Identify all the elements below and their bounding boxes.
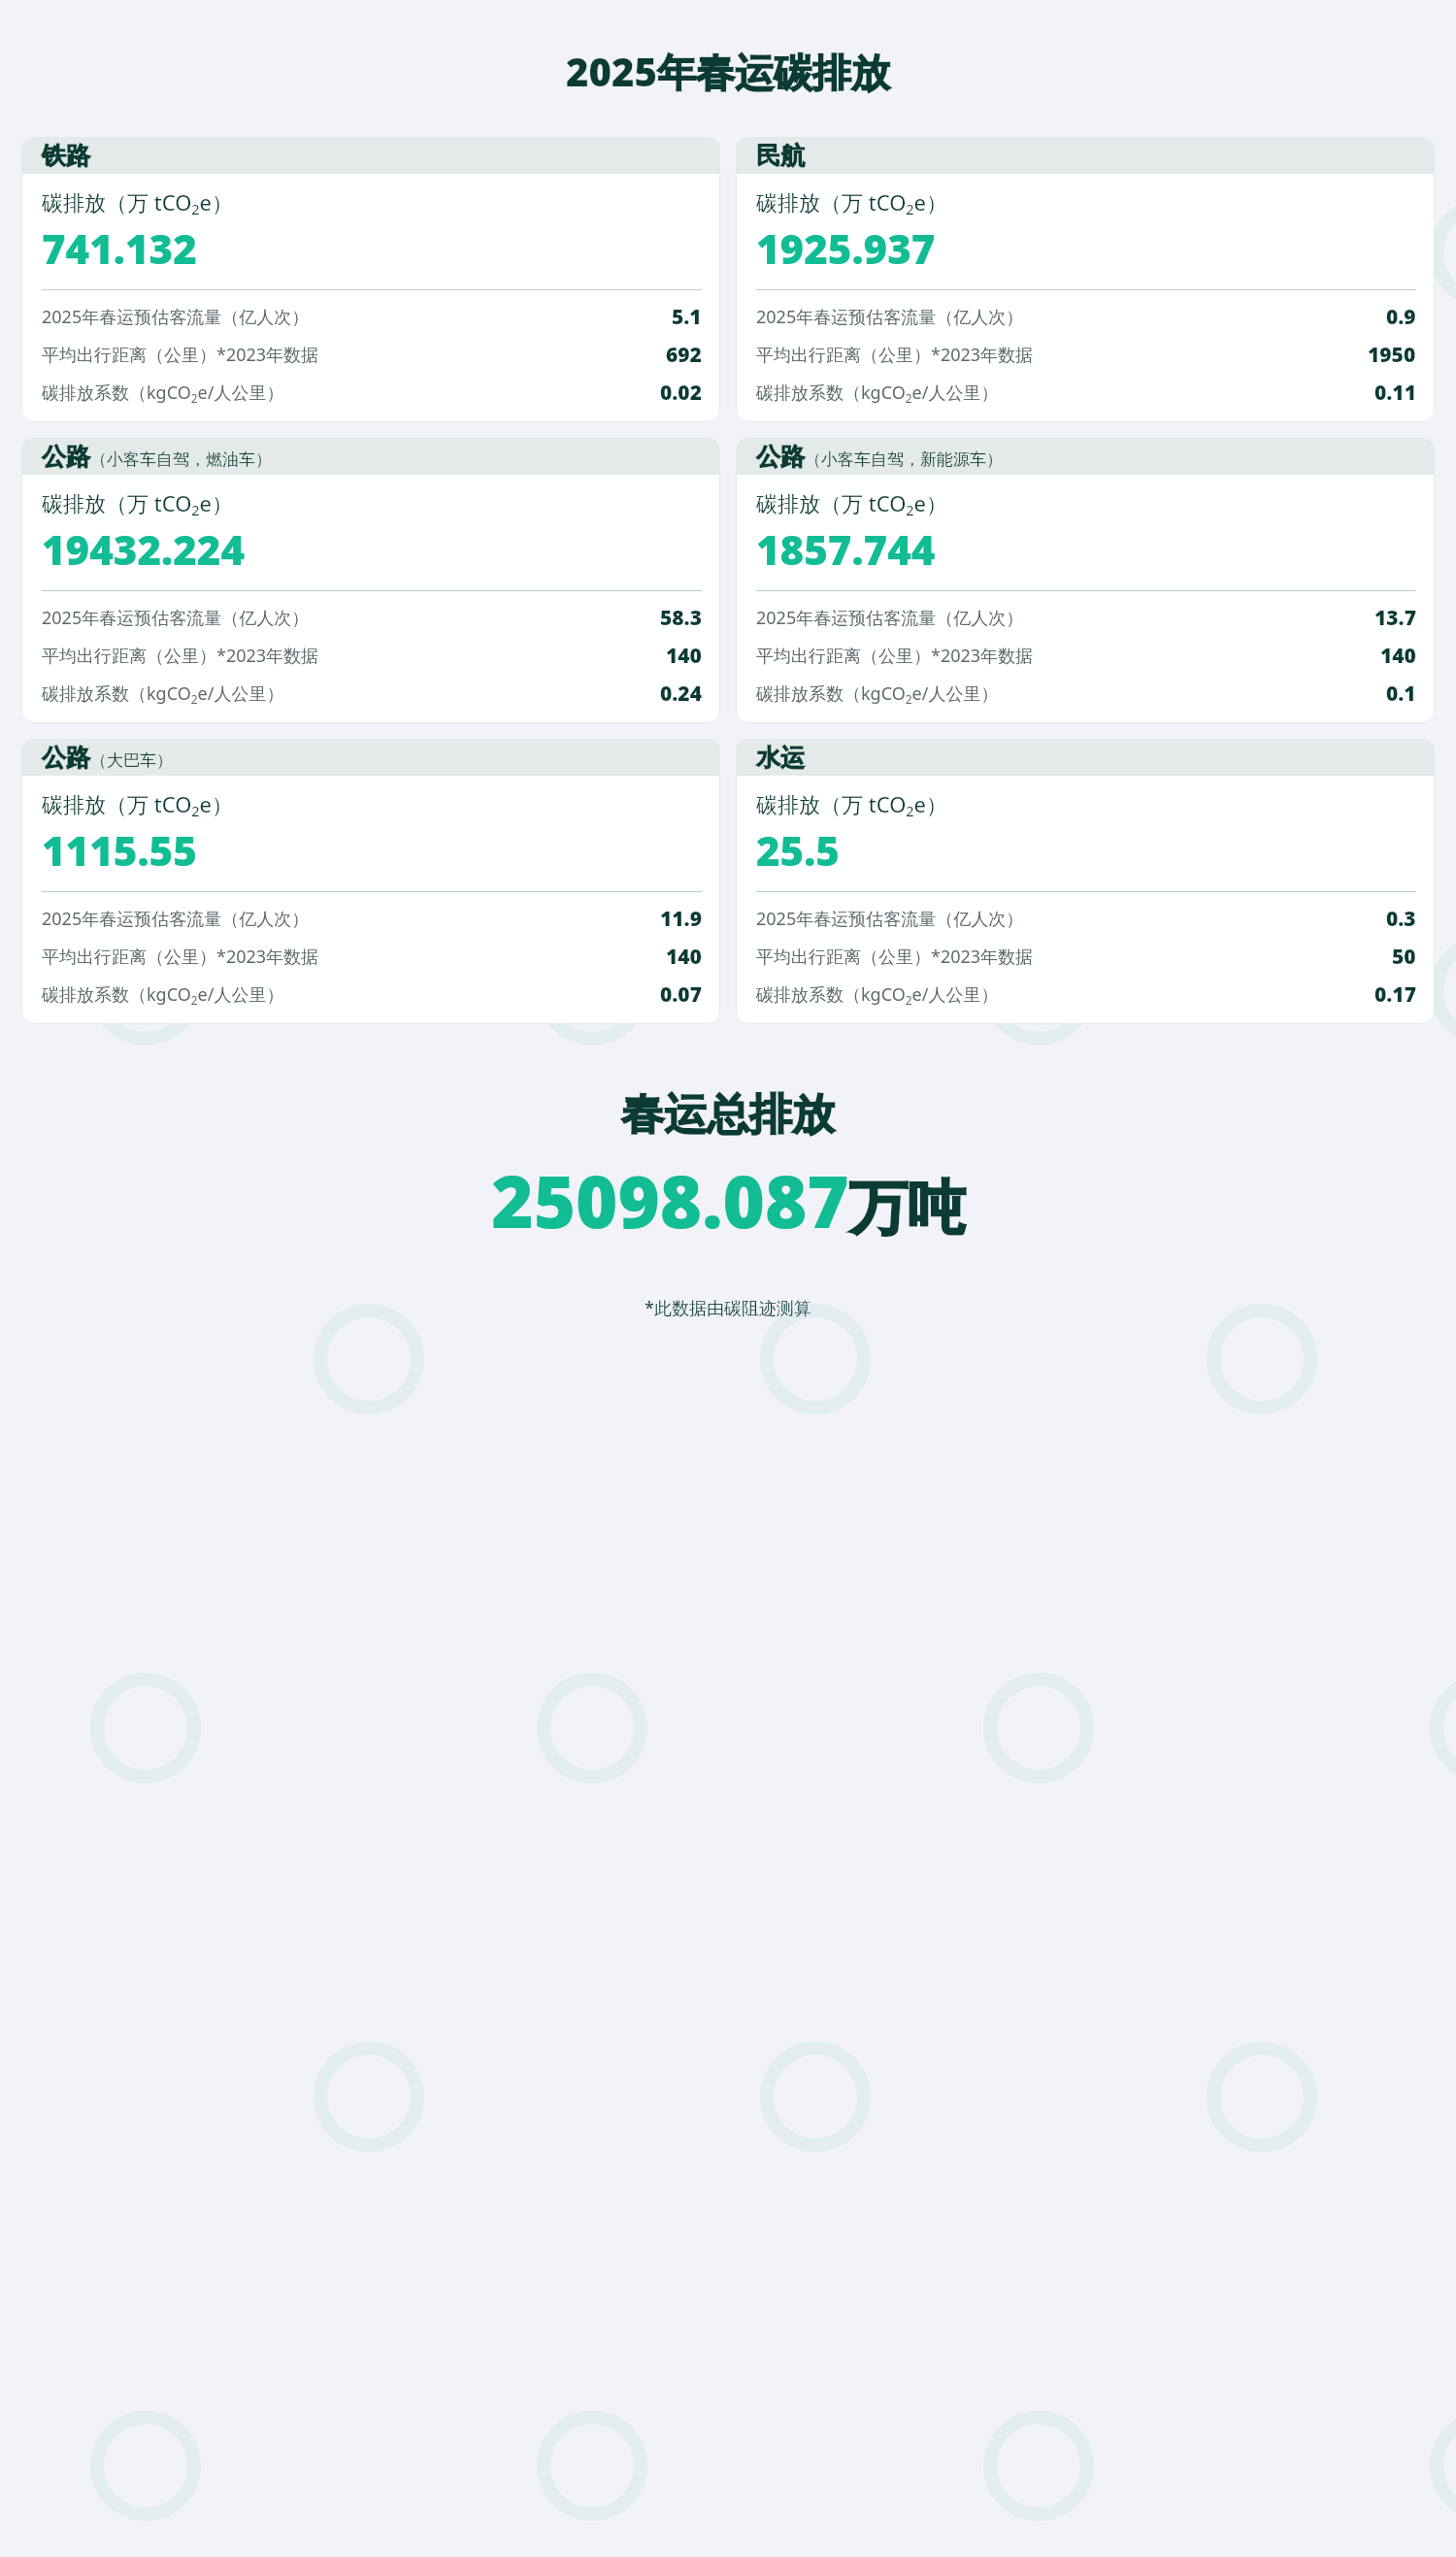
staticText: 碳排放系数（kgCO2e/人公里） xyxy=(756,982,999,1008)
staticText: 2025年春运预估客流量（亿人次） xyxy=(756,305,1024,329)
staticText: 2025年春运碳排放 xyxy=(0,45,1456,98)
staticText: 140 xyxy=(666,943,702,971)
staticText: （大巴车） xyxy=(90,750,173,771)
staticText: 11.9 xyxy=(660,905,702,933)
staticText: 140 xyxy=(1380,642,1416,670)
staticText: 25098.087万吨 xyxy=(491,1151,966,1249)
staticText: 2025年春运预估客流量（亿人次） xyxy=(756,606,1024,630)
staticText: 平均出行距离（公里）*2023年数据 xyxy=(42,945,319,969)
staticText: 碳排放系数（kgCO2e/人公里） xyxy=(42,381,284,406)
staticText: 碳排放（万 tCO2e） xyxy=(756,187,948,218)
staticText: 平均出行距离（公里）*2023年数据 xyxy=(756,644,1034,668)
staticText: 公路 xyxy=(42,442,90,472)
button[interactable]: 公路 xyxy=(21,438,720,723)
staticText: 13.7 xyxy=(1374,604,1416,632)
staticText: 公路 xyxy=(756,442,805,472)
staticText: *此数据由碳阻迹测算 xyxy=(0,1296,1456,1320)
staticText: 2025年春运预估客流量（亿人次） xyxy=(42,907,310,931)
button[interactable]: 铁路 xyxy=(21,137,720,422)
staticText: 碳排放系数（kgCO2e/人公里） xyxy=(756,381,999,406)
staticText: 碳排放系数（kgCO2e/人公里） xyxy=(42,982,284,1008)
staticText: 1925.937 xyxy=(756,220,936,276)
button[interactable]: 公路 xyxy=(736,438,1435,723)
staticText: （小客车自驾，新能源车） xyxy=(805,449,1003,470)
staticText: 平均出行距离（公里）*2023年数据 xyxy=(756,945,1034,969)
staticText: 0.02 xyxy=(660,379,702,407)
staticText: 碳排放（万 tCO2e） xyxy=(42,789,234,820)
staticText: 50 xyxy=(1392,943,1416,971)
staticText: 水运 xyxy=(756,743,805,773)
staticText: 2025年春运预估客流量（亿人次） xyxy=(756,907,1024,931)
staticText: 铁路 xyxy=(42,141,90,171)
staticText: （小客车自驾，燃油车） xyxy=(90,449,272,470)
staticText: 平均出行距离（公里）*2023年数据 xyxy=(42,343,319,367)
button[interactable]: 公路 xyxy=(21,739,720,1024)
staticText: 碳排放（万 tCO2e） xyxy=(756,789,948,820)
staticText: 58.3 xyxy=(660,604,702,632)
staticText: 公路 xyxy=(42,743,90,773)
staticText: 2025年春运预估客流量（亿人次） xyxy=(42,606,310,630)
staticText: 1857.744 xyxy=(756,521,936,577)
staticText: 碳排放（万 tCO2e） xyxy=(756,488,948,519)
staticText: 5.1 xyxy=(672,303,702,331)
staticText: 0.9 xyxy=(1386,303,1416,331)
staticText: 碳排放系数（kgCO2e/人公里） xyxy=(42,681,284,707)
staticText: 碳排放系数（kgCO2e/人公里） xyxy=(756,681,999,707)
staticText: 碳排放（万 tCO2e） xyxy=(42,488,234,519)
staticText: 692 xyxy=(666,341,702,369)
staticText: 1115.55 xyxy=(42,822,197,878)
staticText: 741.132 xyxy=(42,220,197,276)
staticText: 平均出行距离（公里）*2023年数据 xyxy=(756,343,1034,367)
button[interactable]: 水运 xyxy=(736,739,1435,1024)
staticText: 碳排放（万 tCO2e） xyxy=(42,187,234,218)
staticText: 1950 xyxy=(1368,341,1416,369)
staticText: 0.1 xyxy=(1386,680,1416,708)
staticText: 0.07 xyxy=(660,980,702,1009)
staticText: 0.3 xyxy=(1386,905,1416,933)
staticText: 19432.224 xyxy=(42,521,246,577)
staticText: 25.5 xyxy=(756,822,840,878)
staticText: 0.17 xyxy=(1374,980,1416,1009)
staticText: 0.24 xyxy=(660,680,702,708)
staticText: 春运总排放 xyxy=(0,1088,1456,1142)
button[interactable]: 民航 xyxy=(736,137,1435,422)
staticText: 平均出行距离（公里）*2023年数据 xyxy=(42,644,319,668)
staticText: 2025年春运预估客流量（亿人次） xyxy=(42,305,310,329)
staticText: 140 xyxy=(666,642,702,670)
staticText: 0.11 xyxy=(1374,379,1416,407)
staticText: 民航 xyxy=(756,141,805,171)
